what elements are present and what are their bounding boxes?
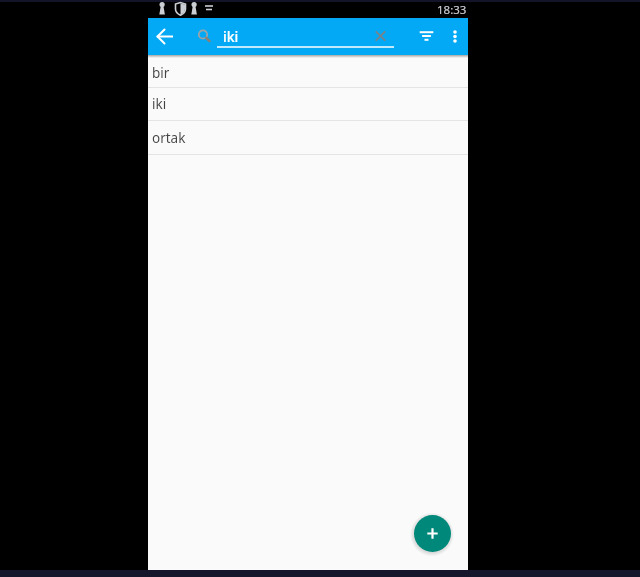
staticText: iki — [223, 27, 239, 46]
button[interactable] — [414, 515, 451, 552]
button[interactable] — [413, 23, 440, 50]
button[interactable]: ortak — [148, 121, 468, 155]
staticText: bir — [152, 64, 170, 82]
button[interactable] — [444, 23, 467, 46]
button[interactable] — [149, 20, 181, 52]
button[interactable]: iki — [217, 18, 394, 55]
staticText: iki — [152, 95, 167, 113]
button[interactable] — [370, 25, 391, 46]
staticText: 18:33 — [437, 2, 467, 18]
button[interactable]: iki — [148, 88, 468, 121]
staticText: ortak — [152, 129, 186, 147]
button[interactable]: bir — [148, 58, 468, 88]
